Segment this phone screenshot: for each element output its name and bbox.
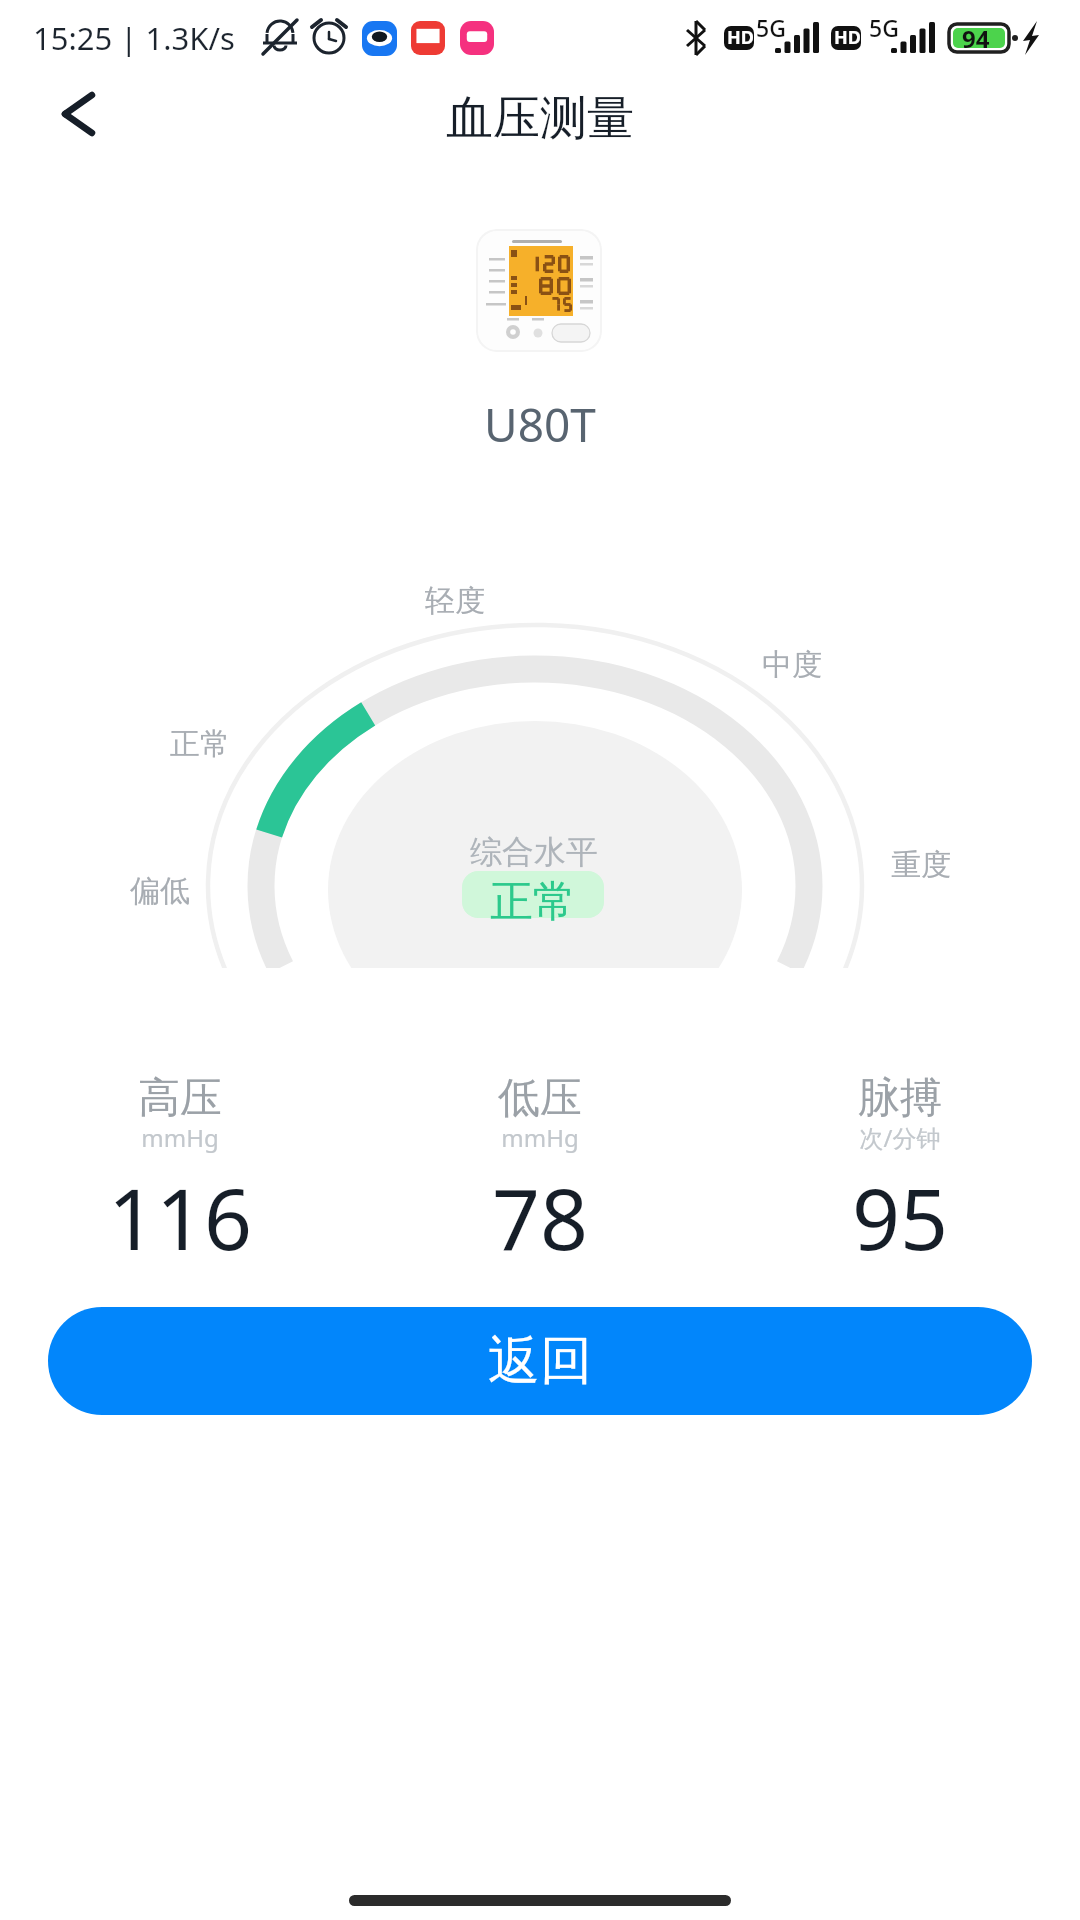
button[interactable]: Back: [38, 74, 118, 154]
staticText: 116: [0, 1160, 360, 1274]
staticText: HD: [727, 25, 754, 50]
staticText: 综合水平: [470, 832, 598, 872]
staticText: 78: [360, 1160, 720, 1274]
staticText: mmHg: [0, 1121, 360, 1154]
staticText: 94: [962, 22, 990, 55]
staticText: 轻度: [425, 582, 485, 620]
staticText: 脉搏: [720, 1072, 1080, 1125]
staticText: 5G: [756, 12, 786, 43]
staticText: 高压: [0, 1072, 360, 1125]
staticText: 重度: [891, 846, 951, 884]
staticText: 次/分钟: [720, 1121, 1080, 1154]
staticText: 偏低: [130, 872, 190, 910]
staticText: U80T: [0, 393, 1080, 456]
staticText: 5G: [869, 12, 899, 43]
button[interactable]: 返回: [48, 1307, 1032, 1415]
staticText: 正常: [462, 875, 604, 929]
staticText: 中度: [762, 646, 822, 684]
staticText: HD: [834, 25, 861, 50]
staticText: 正常: [170, 725, 230, 763]
staticText: 返回: [488, 1328, 592, 1394]
staticText: 95: [720, 1160, 1080, 1274]
staticText: mmHg: [360, 1121, 720, 1154]
staticText: 15:25 | 1.3K/s: [33, 17, 235, 59]
staticText: 低压: [360, 1072, 720, 1125]
staticText: 血压测量: [446, 89, 634, 148]
